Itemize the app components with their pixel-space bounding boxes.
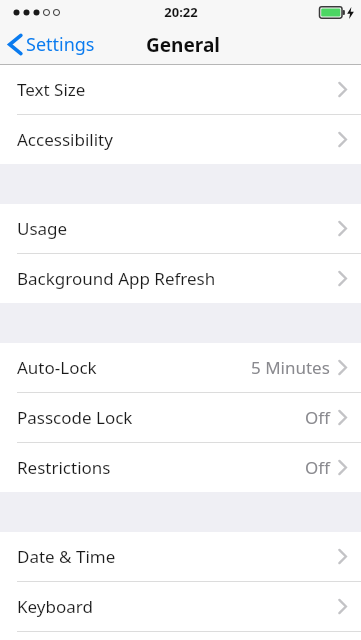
staticText: Off — [305, 406, 330, 429]
staticText: Settings — [26, 32, 95, 57]
button[interactable]: Usage — [0, 204, 361, 253]
staticText: General — [146, 32, 220, 58]
button[interactable]: Date & Time — [0, 532, 361, 581]
button[interactable]: Passcode Lock — [0, 393, 361, 442]
staticText: Restrictions — [17, 456, 111, 479]
staticText: Text Size — [17, 78, 86, 101]
staticText: Accessibility — [17, 128, 113, 151]
button[interactable]: Settings — [0, 24, 105, 65]
staticText: Auto-Lock — [17, 356, 97, 379]
staticText: 20:22 — [164, 3, 198, 21]
staticText: Off — [305, 456, 330, 479]
staticText: 5 Minutes — [251, 356, 330, 379]
staticText: Keyboard — [17, 595, 93, 618]
button[interactable]: Keyboard — [0, 582, 361, 631]
staticText: Date & Time — [17, 545, 116, 568]
button[interactable]: Restrictions — [0, 443, 361, 492]
button[interactable]: Accessibility — [0, 115, 361, 164]
button[interactable]: Auto-Lock — [0, 343, 361, 392]
button[interactable]: Background App Refresh — [0, 254, 361, 303]
staticText: Passcode Lock — [17, 406, 133, 429]
staticText: Background App Refresh — [17, 267, 216, 290]
button[interactable]: Text Size — [0, 65, 361, 114]
staticText: Usage — [17, 217, 68, 240]
